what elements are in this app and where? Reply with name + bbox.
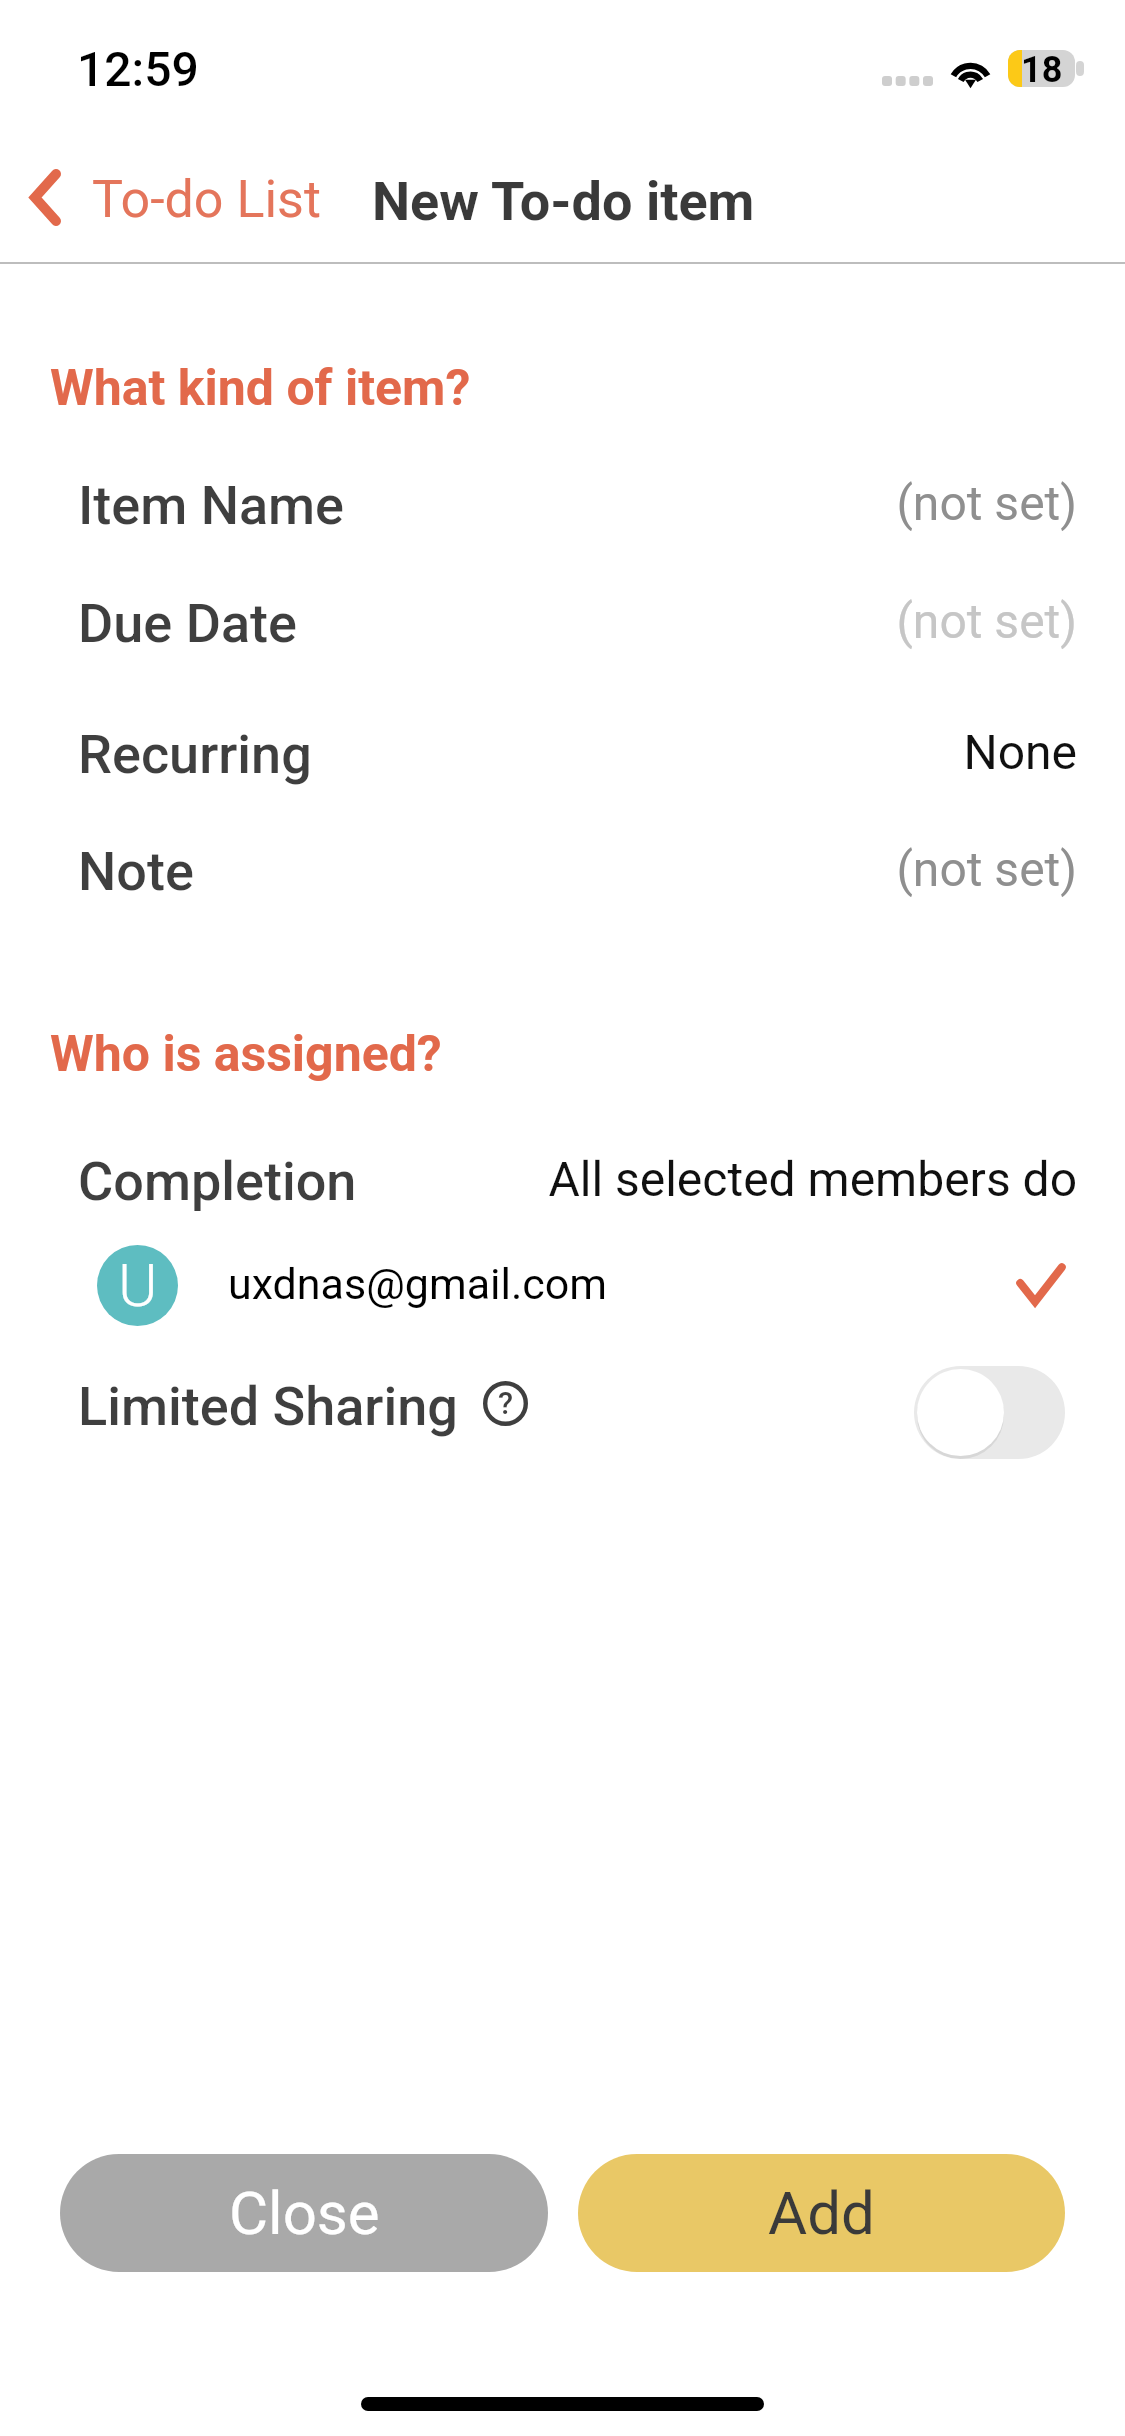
staticText: 18 bbox=[1021, 50, 1063, 86]
staticText: Completion bbox=[78, 1150, 357, 1213]
other: Selected bbox=[1015, 1261, 1067, 1309]
staticText: (not set) bbox=[0, 475, 1077, 531]
button[interactable]: To-do List bbox=[92, 169, 321, 230]
staticText: Who is assigned? bbox=[50, 1025, 442, 1084]
staticText: New To-do item bbox=[372, 170, 755, 233]
button[interactable]: Add bbox=[578, 2154, 1065, 2272]
staticText: Recurring bbox=[78, 723, 312, 786]
staticText: ? bbox=[498, 1385, 514, 1421]
button[interactable]: Back bbox=[14, 153, 76, 241]
button[interactable]: Close bbox=[60, 2154, 548, 2272]
staticText: Due Date bbox=[78, 592, 297, 655]
button[interactable]: Recurring bbox=[0, 683, 1125, 801]
button[interactable]: Due Date bbox=[0, 552, 1125, 670]
staticText: Limited Sharing bbox=[78, 1375, 458, 1438]
button[interactable]: Limited Sharing toggle bbox=[914, 1366, 1065, 1459]
staticText: Item Name bbox=[78, 474, 345, 537]
staticText: What kind of item? bbox=[50, 359, 471, 418]
staticText: Close bbox=[229, 2178, 380, 2248]
staticText: uxdnas@gmail.com bbox=[228, 1259, 608, 1309]
button[interactable]: Limited Sharing bbox=[78, 1375, 528, 1438]
staticText: None bbox=[0, 724, 1077, 780]
button[interactable]: U bbox=[0, 1245, 1125, 1327]
staticText: All selected members do bbox=[0, 1151, 1077, 1207]
staticText: (not set) bbox=[0, 841, 1077, 897]
staticText: 12:59 bbox=[77, 41, 199, 97]
staticText: Add bbox=[768, 2178, 875, 2248]
staticText: Note bbox=[78, 840, 194, 903]
button[interactable]: Note bbox=[0, 800, 1125, 918]
staticText: (not set) bbox=[0, 593, 1077, 649]
staticText: U bbox=[118, 1250, 158, 1320]
button[interactable]: Completion bbox=[0, 1110, 1125, 1228]
button[interactable]: Item Name bbox=[0, 434, 1125, 552]
